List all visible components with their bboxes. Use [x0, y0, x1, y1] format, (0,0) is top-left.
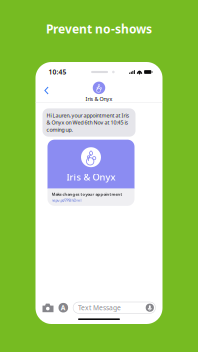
staticText: Text Message: [78, 303, 121, 312]
staticText: Iris & Onyx: [66, 171, 115, 183]
staticText: nspv.pt/7PBhDml: [51, 198, 81, 203]
button[interactable]: Apps: [58, 303, 68, 312]
staticText: Make changes to your appointment: [51, 192, 122, 197]
staticText: A: [61, 303, 66, 312]
staticText: Prevent no-shows: [46, 21, 152, 37]
staticText: Hi Lauren, your appointment at Iris & On…: [46, 112, 129, 133]
button[interactable]: Iris & Onyx: [47, 140, 134, 206]
button[interactable]: Dictate: [146, 304, 154, 312]
staticText: Iris & Onyx: [85, 95, 112, 102]
button[interactable]: Camera: [42, 303, 53, 312]
button[interactable]: Back: [37, 82, 53, 99]
staticText: 10:45: [48, 68, 66, 76]
